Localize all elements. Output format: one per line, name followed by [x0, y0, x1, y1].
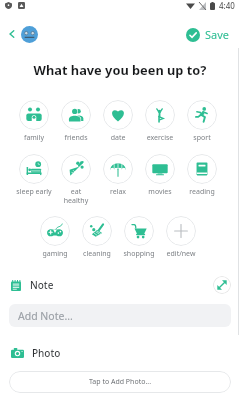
button[interactable]: edit/new — [166, 216, 196, 259]
staticText: edit/new — [153, 249, 209, 259]
staticText: date — [90, 133, 146, 143]
staticText: family — [6, 133, 62, 143]
button[interactable]: exercise — [145, 100, 175, 143]
staticText: sport — [174, 133, 230, 143]
button[interactable]: sleep early — [19, 154, 49, 197]
staticText: relax — [90, 187, 146, 197]
staticText: reading — [174, 187, 230, 197]
button[interactable]: family — [19, 100, 49, 143]
button[interactable]: Save — [184, 25, 232, 44]
button[interactable]: gaming — [40, 216, 70, 259]
staticText: Note — [30, 278, 54, 292]
button[interactable]: relax — [103, 154, 133, 197]
button[interactable]: cleaning — [82, 216, 112, 259]
button[interactable]: shopping — [124, 216, 154, 259]
button[interactable]: Mood — [21, 26, 38, 43]
staticText: shopping — [111, 249, 167, 259]
button[interactable]: sport — [187, 100, 217, 143]
button[interactable]: Tap to Add Photo... — [9, 371, 231, 393]
staticText: cleaning — [69, 249, 125, 259]
staticText: Add Note... — [18, 309, 73, 323]
staticText: 4:40 — [219, 0, 235, 11]
staticText: friends — [48, 133, 104, 143]
button[interactable]: date — [103, 100, 133, 143]
staticText: movies — [132, 187, 188, 197]
button[interactable]: Back — [5, 27, 19, 41]
button[interactable]: friends — [61, 100, 91, 143]
staticText: Photo — [32, 346, 61, 360]
staticText: eat healthy — [48, 187, 104, 205]
staticText: sleep early — [6, 187, 62, 197]
button[interactable]: eat healthy — [61, 154, 91, 205]
staticText: gaming — [27, 249, 83, 259]
staticText: Tap to Add Photo... — [89, 377, 152, 387]
button[interactable]: Expand note — [213, 276, 231, 294]
button[interactable]: reading — [187, 154, 217, 197]
staticText: What have you been up to? — [0, 61, 240, 78]
staticText: exercise — [132, 133, 188, 143]
button[interactable]: movies — [145, 154, 175, 197]
button[interactable]: Add Note... — [9, 304, 231, 327]
staticText: Save — [205, 27, 230, 42]
